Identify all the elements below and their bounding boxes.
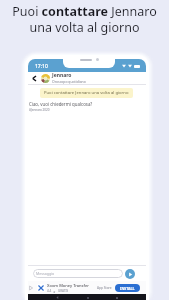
staticText: Ciao, vuoi chiedermi qualcosa? (29, 101, 93, 107)
button[interactable]: INSTALL (115, 284, 140, 292)
staticText: #Jennaro 2020 (29, 108, 50, 112)
button[interactable]: Messaggio (33, 269, 123, 278)
staticText: Jennaro (52, 72, 72, 79)
staticText: Puoi contattare Jennaro una volta al gio… (12, 3, 157, 36)
staticText: 4.4 (47, 289, 52, 293)
staticText: 17:10 (35, 63, 48, 70)
staticText: GRATIS (58, 289, 69, 293)
staticText: INSTALL (120, 286, 135, 291)
button[interactable]: Back (30, 74, 39, 83)
staticText: Messaggio (36, 271, 55, 276)
staticText: App Store (97, 286, 112, 290)
staticText: ★ (53, 290, 56, 293)
staticText: Xoom Money Transfer (47, 283, 89, 288)
staticText: Oroscopo quotidiano (52, 79, 86, 84)
staticText: Puoi contattare Jennaro una volta al gio… (44, 90, 129, 96)
button[interactable]: Send (125, 269, 135, 279)
